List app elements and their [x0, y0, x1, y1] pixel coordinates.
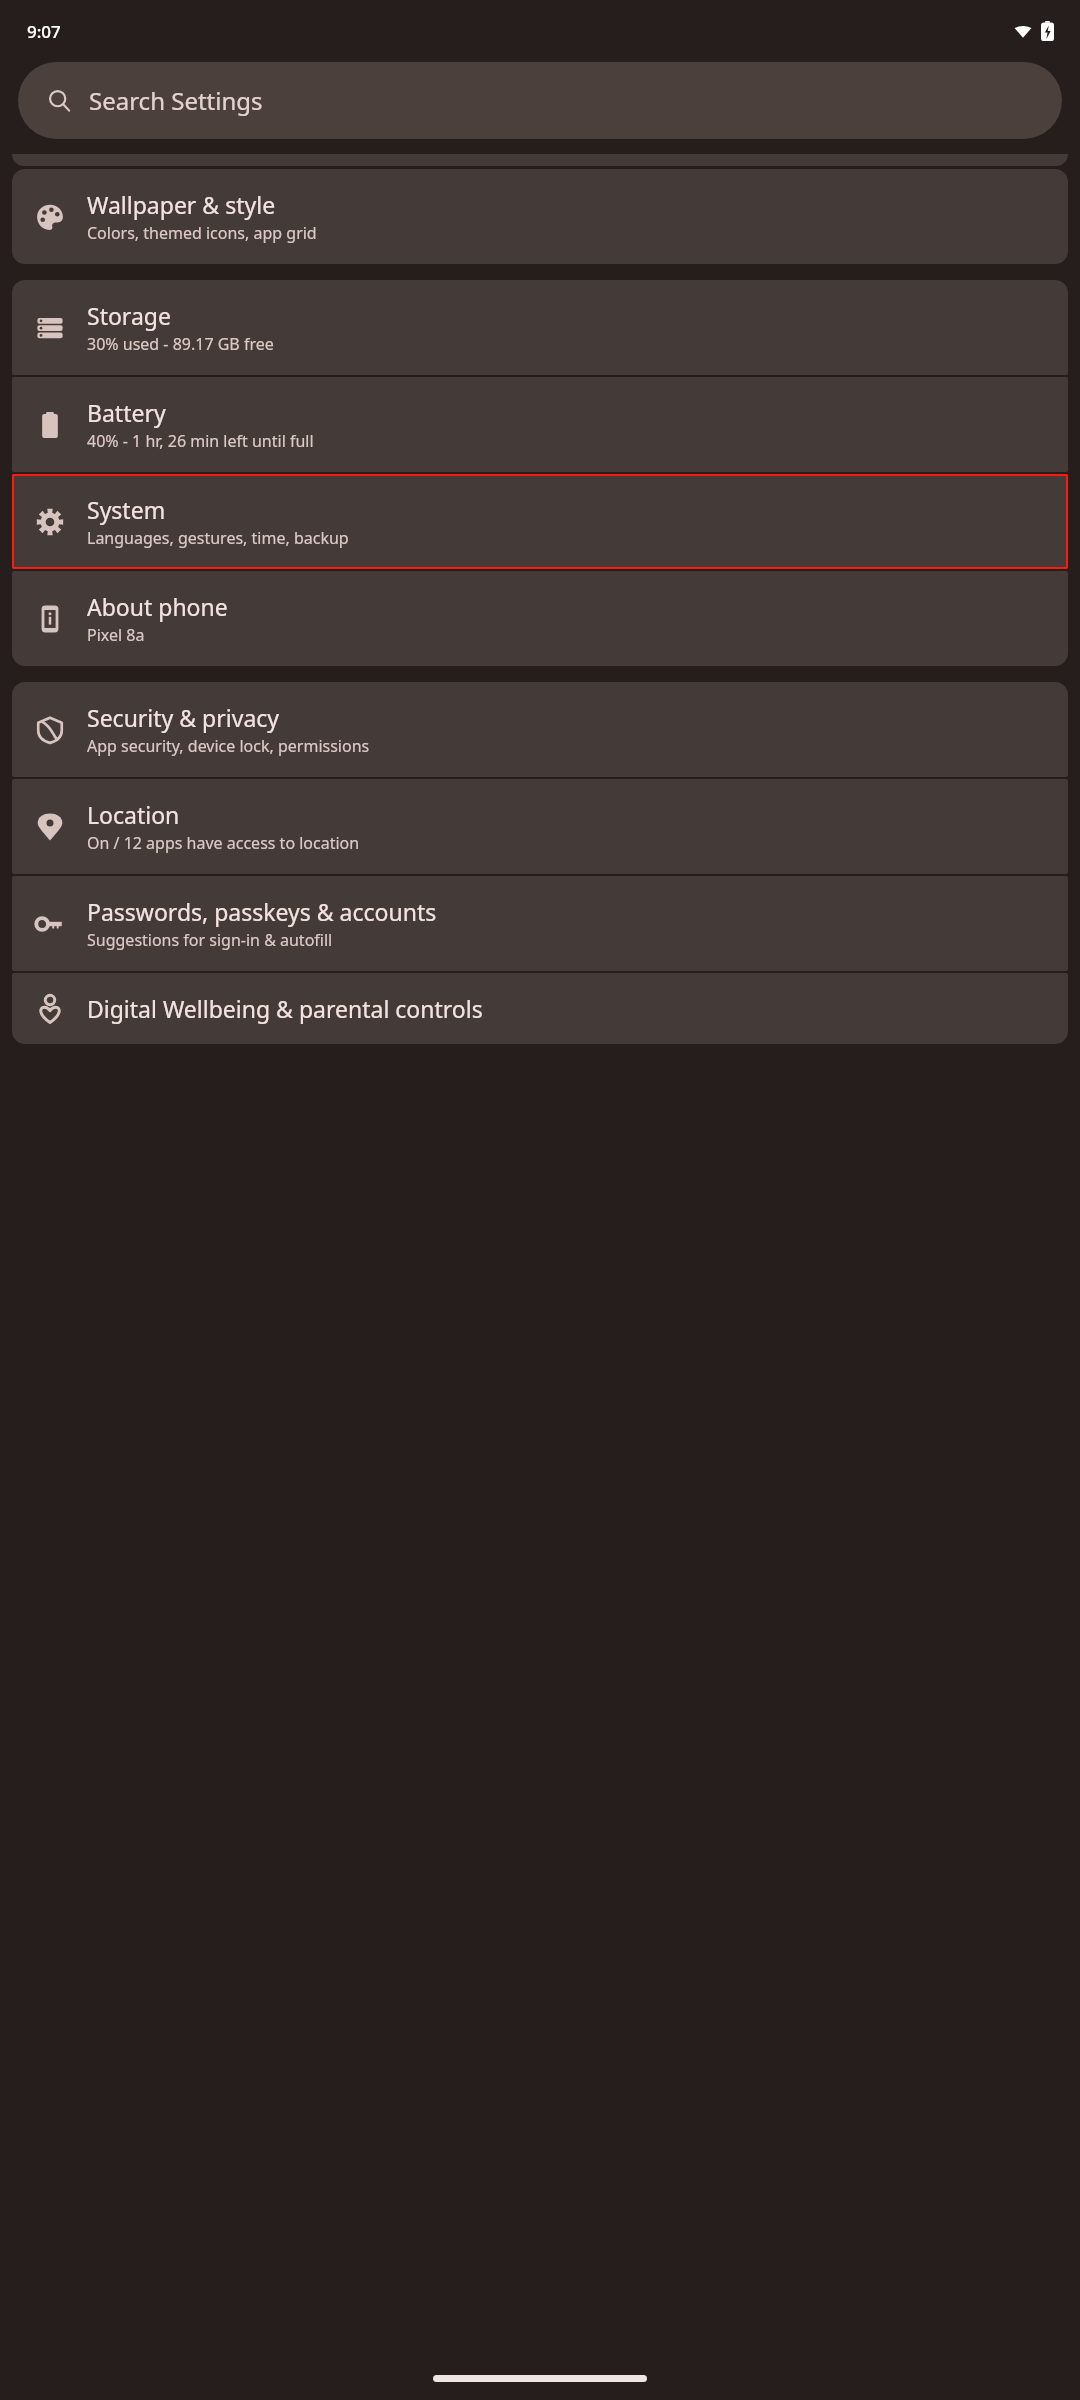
- staticText: About phone: [87, 591, 228, 622]
- button[interactable]: Search Settings: [18, 62, 1062, 139]
- staticText: 40% - 1 hr, 26 min left until full: [87, 430, 314, 452]
- staticText: Security & privacy: [87, 702, 280, 733]
- staticText: Storage: [87, 300, 171, 331]
- button[interactable]: Wallpaper: [12, 169, 1068, 264]
- staticText: On / 12 apps have access to location: [87, 832, 360, 854]
- staticText: Languages, gestures, time, backup: [87, 527, 349, 549]
- button[interactable]: Storage: [12, 280, 1068, 375]
- other: Wallpaper: [36, 203, 64, 231]
- other: Security and privacy: [36, 716, 64, 744]
- staticText: 30% used - 89.17 GB free: [87, 333, 274, 355]
- button[interactable]: Battery: [12, 377, 1068, 472]
- other: Battery: [36, 411, 64, 439]
- staticText: Wallpaper & style: [87, 189, 276, 220]
- staticText: Digital Wellbeing & parental controls: [87, 993, 483, 1024]
- staticText: Pixel 8a: [87, 624, 145, 646]
- staticText: App security, device lock, permissions: [87, 735, 370, 757]
- button[interactable]: Passwords: [12, 876, 1068, 971]
- button[interactable]: Location: [12, 779, 1068, 874]
- button[interactable]: About phone: [12, 571, 1068, 666]
- other: Digital Wellbeing: [36, 995, 64, 1023]
- staticText: System: [87, 494, 166, 525]
- staticText: Colors, themed icons, app grid: [87, 222, 317, 244]
- staticText: Search Settings: [89, 84, 263, 117]
- staticText: Battery: [87, 397, 166, 428]
- staticText: 9:07: [27, 20, 61, 43]
- other: Location: [36, 813, 64, 841]
- button[interactable]: Digital Wellbeing: [12, 973, 1068, 1044]
- staticText: Suggestions for sign-in & autofill: [87, 929, 333, 951]
- button[interactable]: System: [12, 474, 1068, 569]
- other: Storage: [36, 314, 64, 342]
- other: About phone: [36, 605, 64, 633]
- other: Passwords: [36, 910, 64, 938]
- staticText: Location: [87, 799, 180, 830]
- button[interactable]: Security and privacy: [12, 682, 1068, 777]
- staticText: Passwords, passkeys & accounts: [87, 896, 437, 927]
- other: System: [36, 508, 64, 536]
